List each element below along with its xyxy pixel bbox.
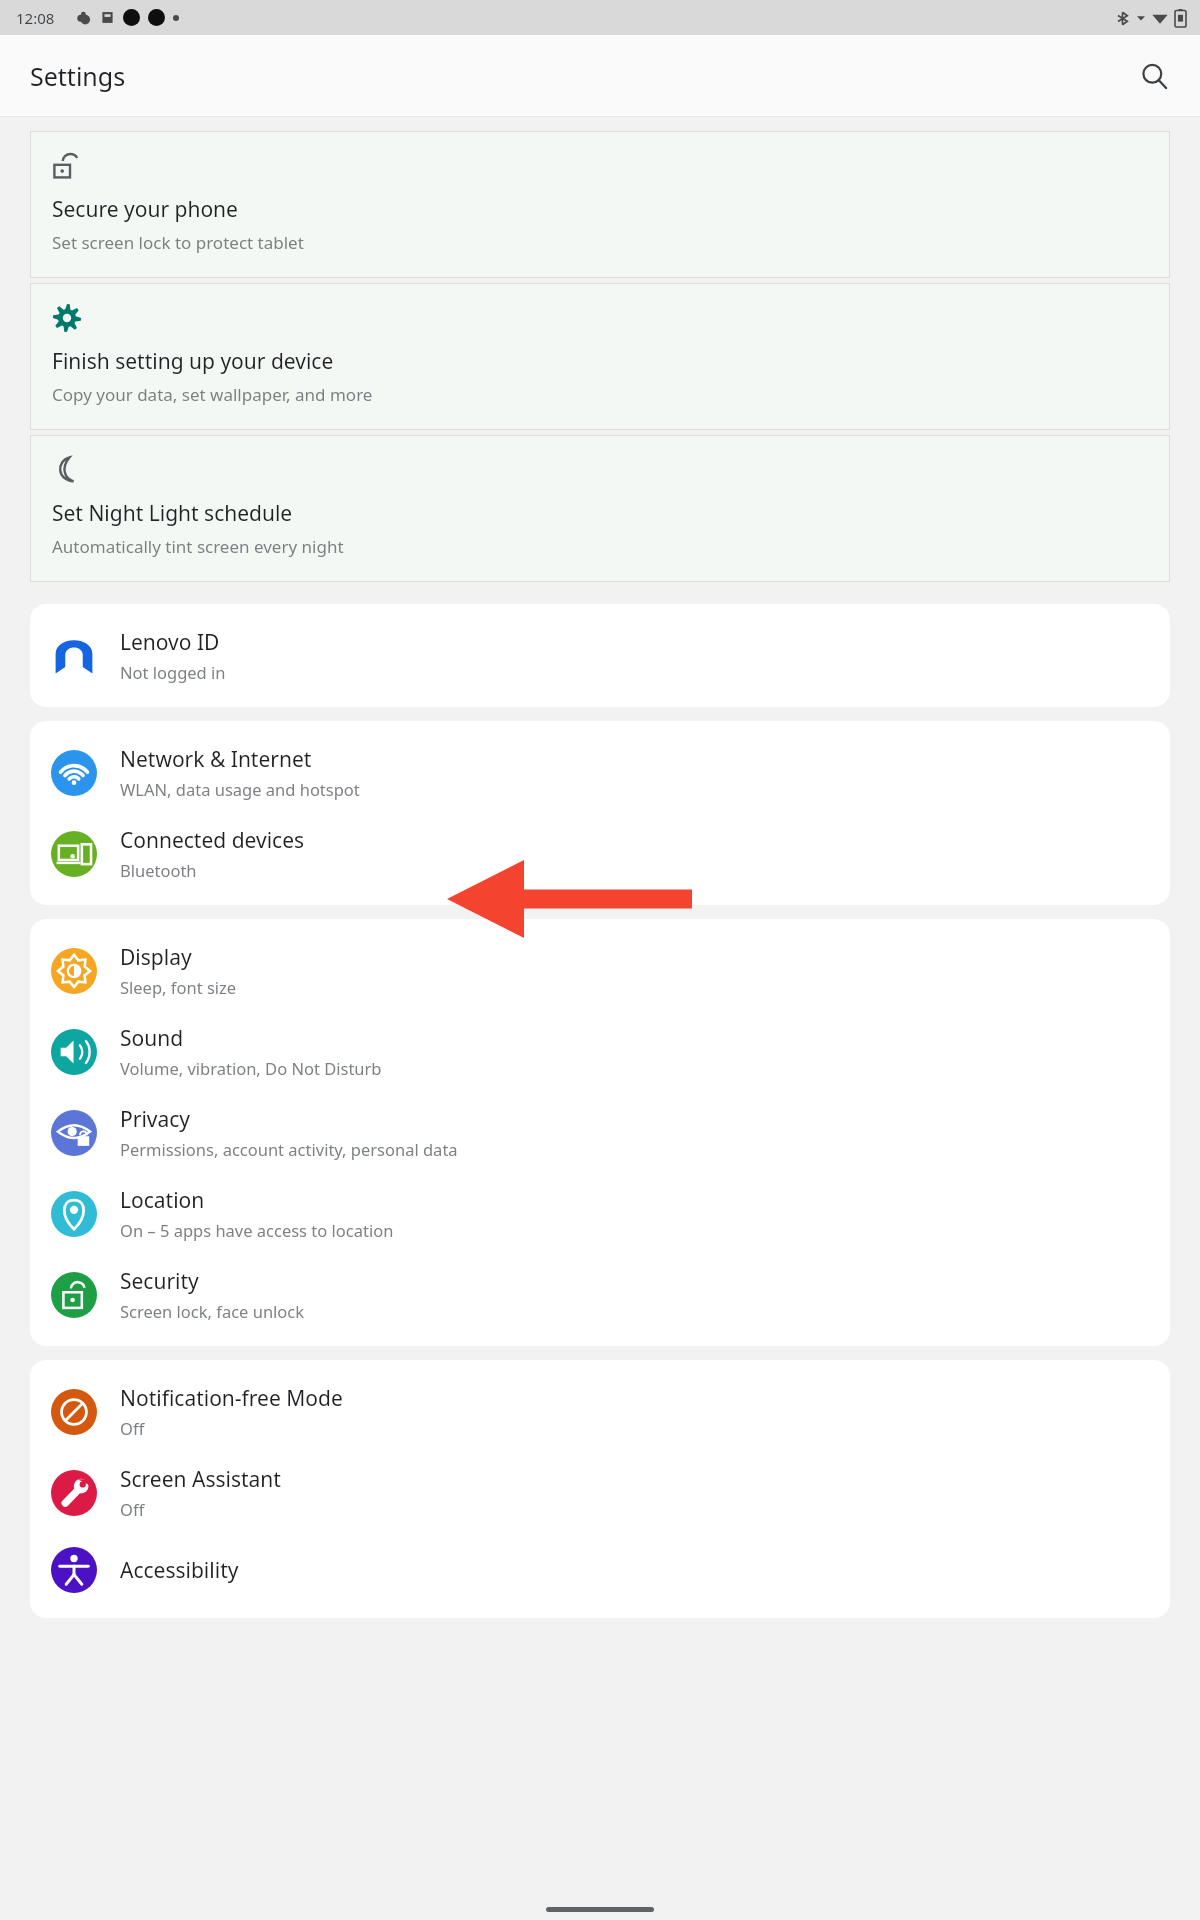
staticText: Volume, vibration, Do Not Disturb (120, 1057, 382, 1079)
staticText: Location (120, 1186, 205, 1215)
staticText: Privacy (120, 1105, 191, 1134)
staticText: On – 5 apps have access to location (120, 1219, 394, 1241)
staticText: Copy your data, set wallpaper, and more (52, 383, 373, 406)
button[interactable]: Notification-free Mode (30, 1371, 1170, 1452)
staticText: Lenovo ID (120, 628, 220, 657)
button[interactable]: Lenovo ID (30, 615, 1170, 696)
staticText: Set screen lock to protect tablet (52, 231, 304, 254)
staticText: Network & Internet (120, 745, 312, 774)
staticText: Notification-free Mode (120, 1384, 343, 1413)
staticText: Secure your phone (52, 195, 238, 224)
staticText: Off (120, 1498, 145, 1520)
button[interactable]: Secure your phone (30, 131, 1170, 278)
staticText: Finish setting up your device (52, 347, 334, 376)
staticText: Screen Assistant (120, 1465, 281, 1494)
button[interactable]: Sound (30, 1011, 1170, 1092)
staticText: Security (120, 1267, 199, 1296)
staticText: Accessibility (120, 1556, 239, 1585)
staticText: Off (120, 1417, 145, 1439)
button[interactable]: Connected devices (30, 813, 1170, 894)
button[interactable]: Location (30, 1173, 1170, 1254)
staticText: Sleep, font size (120, 976, 237, 998)
staticText: Not logged in (120, 661, 226, 683)
staticText: Automatically tint screen every night (52, 535, 344, 558)
button[interactable]: Accessibility (30, 1533, 1170, 1607)
button[interactable]: Search (1128, 50, 1180, 102)
staticText: 12:08 (16, 8, 55, 28)
button[interactable]: Network & Internet (30, 732, 1170, 813)
staticText: WLAN, data usage and hotspot (120, 778, 360, 800)
button[interactable]: Set Night Light schedule (30, 435, 1170, 582)
staticText: Connected devices (120, 826, 305, 855)
staticText: Settings (30, 59, 126, 93)
button[interactable]: Privacy (30, 1092, 1170, 1173)
staticText: Bluetooth (120, 859, 197, 881)
button[interactable]: Screen Assistant (30, 1452, 1170, 1533)
staticText: Sound (120, 1024, 184, 1053)
staticText: Set Night Light schedule (52, 499, 293, 528)
button[interactable]: Finish setting up your device (30, 283, 1170, 430)
button[interactable]: Security (30, 1254, 1170, 1335)
staticText: Permissions, account activity, personal … (120, 1138, 458, 1160)
button[interactable]: Display (30, 930, 1170, 1011)
staticText: Display (120, 943, 192, 972)
staticText: Screen lock, face unlock (120, 1300, 305, 1322)
